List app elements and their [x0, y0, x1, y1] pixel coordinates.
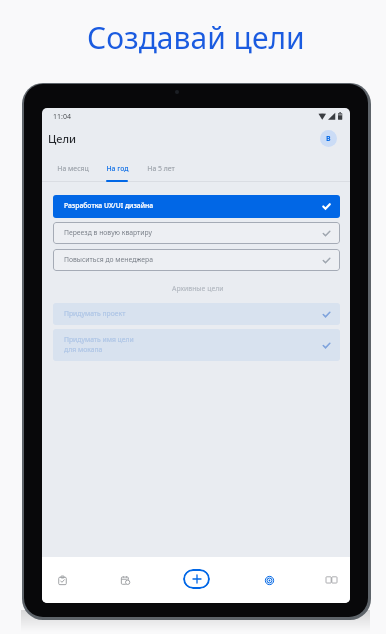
- button[interactable]: Придумать имя цели для мокапа: [53, 329, 340, 361]
- staticText: Придумать имя цели для мокапа: [64, 335, 134, 354]
- button[interactable]: Придумать проект: [53, 303, 340, 325]
- button[interactable]: Add goal: [183, 569, 210, 589]
- staticText: Архивные цели: [172, 284, 224, 293]
- button[interactable]: Calendar: [111, 565, 139, 595]
- staticText: Повыситься до менеджера: [64, 255, 153, 264]
- button[interactable]: На 5 лет: [140, 154, 182, 182]
- staticText: B: [326, 134, 331, 144]
- staticText: 11:04: [53, 112, 71, 122]
- button[interactable]: Повыситься до менеджера: [53, 249, 340, 271]
- button[interactable]: Goals: [255, 565, 283, 595]
- button[interactable]: Library: [317, 565, 345, 595]
- staticText: Разработка UX/UI дизайна: [64, 201, 154, 210]
- button[interactable]: Account: [320, 130, 337, 147]
- staticText: На месяц: [57, 164, 89, 173]
- staticText: Придумать проект: [64, 309, 126, 318]
- staticText: Цели: [48, 131, 77, 146]
- button[interactable]: На год: [96, 154, 138, 182]
- button[interactable]: На месяц: [52, 154, 94, 182]
- staticText: Создавай цели: [87, 17, 305, 58]
- staticText: На 5 лет: [147, 164, 175, 173]
- button[interactable]: Tasks: [48, 565, 76, 595]
- staticText: На год: [106, 164, 129, 173]
- staticText: Переезд в новую квартиру: [64, 228, 152, 237]
- button[interactable]: Переезд в новую квартиру: [53, 222, 340, 244]
- button[interactable]: Разработка UX/UI дизайна: [53, 195, 340, 218]
